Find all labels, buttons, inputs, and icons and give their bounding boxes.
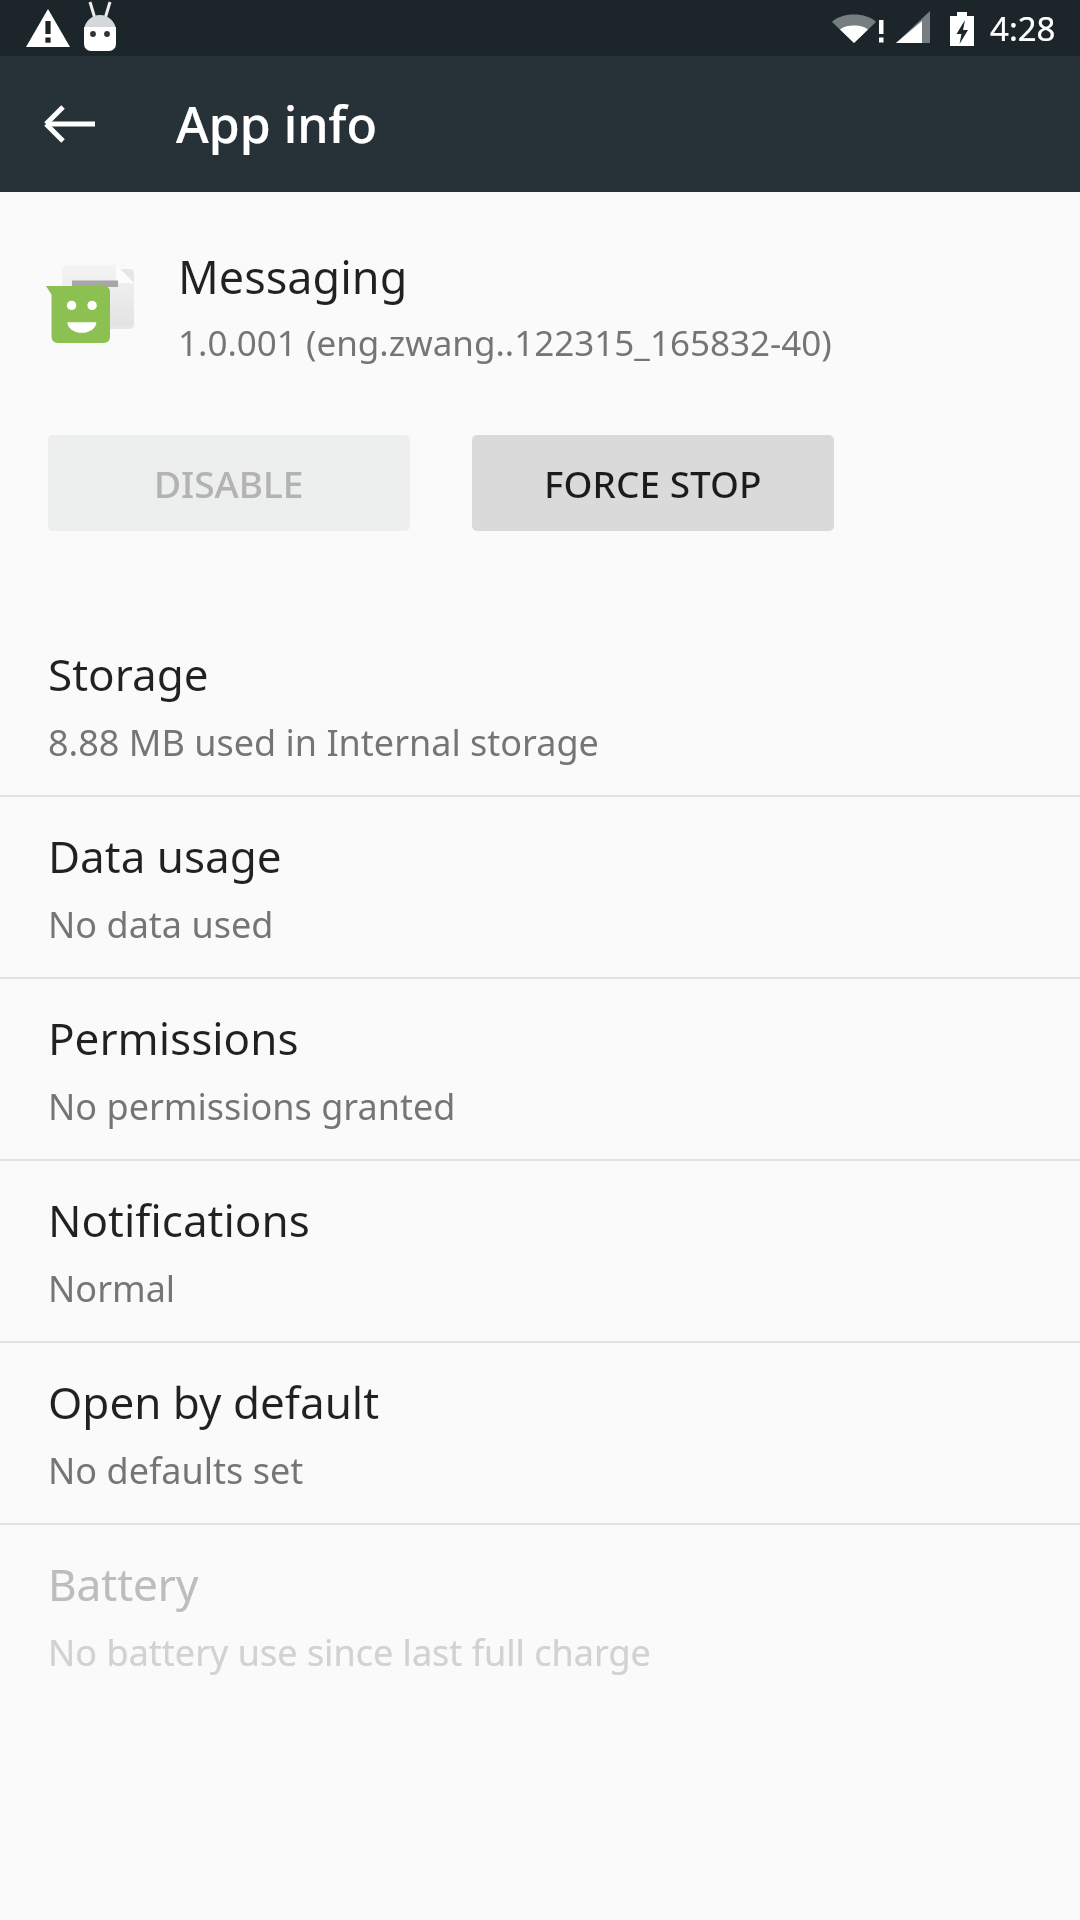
button[interactable]: Battery [0,1525,1080,1705]
staticText: No permissions granted [48,1082,456,1131]
button[interactable]: Storage [0,615,1080,795]
staticText: Normal [48,1264,176,1313]
staticText: Open by default [48,1372,380,1432]
staticText: 8.88 MB used in Internal storage [48,718,599,767]
staticText: Data usage [48,826,282,886]
staticText: Notifications [48,1190,310,1250]
button[interactable]: FORCE STOP [472,435,834,531]
staticText: Storage [48,644,209,704]
staticText: DISABLE [154,458,304,508]
button[interactable]: DISABLE [48,435,410,531]
button[interactable]: Data usage [0,797,1080,977]
staticText: No defaults set [48,1446,304,1495]
staticText: No data used [48,900,274,949]
button[interactable]: Notifications [0,1161,1080,1341]
staticText: Permissions [48,1008,299,1068]
button[interactable]: Open by default [0,1343,1080,1523]
button[interactable]: Permissions [0,979,1080,1159]
staticText: No battery use since last full charge [48,1628,651,1677]
staticText: FORCE STOP [544,458,762,508]
staticText: 4:28 [990,6,1056,51]
staticText: 1.0.001 (eng.zwang..122315_165832-40) [178,319,832,367]
staticText: App info [176,90,377,158]
button[interactable]: Back [20,74,120,174]
staticText: Messaging [178,246,408,307]
staticText: Battery [48,1554,199,1614]
